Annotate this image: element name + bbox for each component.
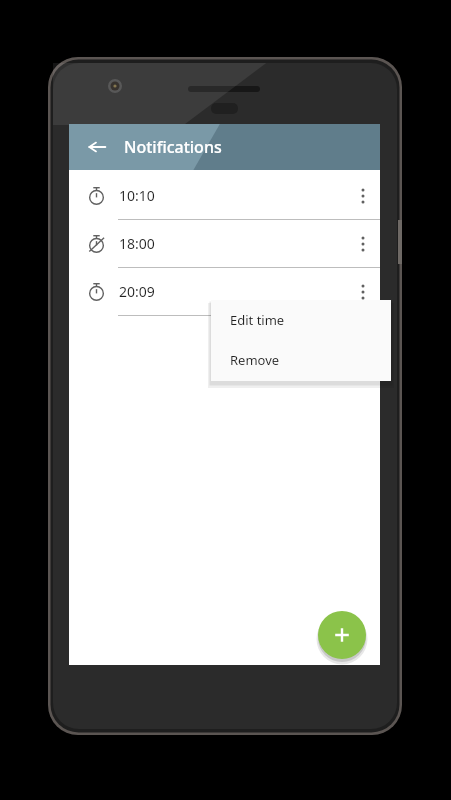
button[interactable]: More options bbox=[346, 172, 380, 219]
staticText: Remove bbox=[230, 351, 280, 369]
staticText: Notifications bbox=[124, 136, 222, 158]
button[interactable]: 10:10 bbox=[69, 172, 380, 219]
button[interactable]: Remove bbox=[211, 340, 391, 380]
staticText: 10:10 bbox=[119, 186, 155, 205]
button[interactable]: More options bbox=[346, 220, 380, 267]
button[interactable]: Edit time bbox=[211, 300, 391, 340]
button[interactable]: Add notification bbox=[318, 611, 366, 659]
button[interactable]: 20:09 bbox=[69, 268, 380, 315]
staticText: 20:09 bbox=[119, 282, 155, 301]
staticText: Edit time bbox=[230, 311, 285, 329]
button[interactable]: Back bbox=[79, 129, 115, 165]
staticText: 18:00 bbox=[119, 234, 155, 253]
button[interactable]: 18:00 bbox=[69, 220, 380, 267]
button[interactable]: More options bbox=[346, 268, 380, 315]
